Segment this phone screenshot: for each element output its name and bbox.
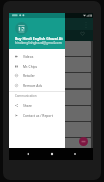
button[interactable]: Contact us / Report: [9, 110, 65, 120]
button[interactable]: Videos: [9, 51, 65, 61]
staticText: Share: [23, 103, 32, 107]
staticText: Mr. Chips: [23, 64, 38, 68]
button[interactable]: Share: [9, 100, 65, 110]
button[interactable]: Add: [79, 137, 88, 146]
button[interactable]: [11, 106, 91, 121]
button[interactable]: Back: [26, 152, 30, 156]
button[interactable]: [11, 138, 91, 153]
staticText: Communication: [15, 94, 37, 98]
staticText: Remove Ads: [23, 83, 43, 87]
button[interactable]: Favourite: [80, 31, 85, 36]
button[interactable]: Mr. Chips: [9, 61, 65, 71]
button[interactable]: [11, 122, 91, 137]
button[interactable]: [11, 73, 91, 88]
button[interactable]: [11, 90, 91, 105]
button[interactable]: Profile: [15, 22, 28, 35]
button[interactable]: [11, 57, 91, 72]
button[interactable]: [11, 41, 91, 56]
staticText: Buy Hindi English Ghazal At ₹799: [15, 36, 64, 41]
button[interactable]: Remove Ads: [9, 80, 65, 90]
staticText: Retailer: [23, 73, 35, 77]
button[interactable]: Home: [50, 152, 54, 156]
button[interactable]: Retailer: [9, 70, 65, 80]
staticText: hindienglishghazal@gmail.com: [15, 41, 65, 45]
button[interactable]: Recents: [73, 152, 77, 156]
staticText: Videos: [23, 54, 34, 58]
staticText: Contact us / Report: [23, 113, 53, 117]
